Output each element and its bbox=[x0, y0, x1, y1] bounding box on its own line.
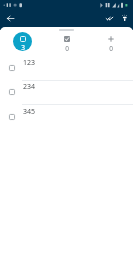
staticText: 345 bbox=[23, 107, 36, 117]
button[interactable]: 0 bbox=[45, 27, 89, 57]
staticText: 3 bbox=[21, 43, 25, 52]
button[interactable]: Mark all as done bbox=[101, 10, 117, 26]
button[interactable]: 345 bbox=[0, 106, 133, 130]
button[interactable]: 234 bbox=[0, 81, 133, 105]
button[interactable]: 0 bbox=[89, 27, 133, 57]
staticText: 234 bbox=[23, 82, 36, 92]
staticText: 0 bbox=[109, 44, 113, 53]
button[interactable]: Delete bbox=[116, 10, 132, 26]
staticText: 0 bbox=[65, 44, 69, 53]
staticText: 123 bbox=[23, 58, 36, 68]
button[interactable]: Back bbox=[2, 10, 18, 26]
button[interactable]: 3 bbox=[0, 27, 45, 57]
button[interactable]: 123 bbox=[0, 57, 133, 81]
